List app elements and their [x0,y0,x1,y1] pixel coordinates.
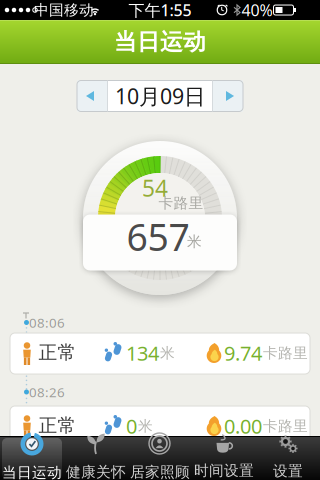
staticText: 134 [126,340,159,366]
staticText: 10月09日 [115,82,205,110]
staticText: 卡路里 [263,417,308,435]
button[interactable]: 前一天 [75,80,105,111]
staticText: 0 [126,413,137,439]
staticText: 中国移动 [34,1,94,19]
button[interactable]: 设置 [256,436,320,480]
staticText: 657 [126,212,189,261]
staticText: 08:26 [29,383,65,401]
staticText: 健康关怀 [66,463,126,480]
staticText: 当日运动 [114,28,206,56]
staticText: 正常 [38,341,76,364]
staticText: 时间设置 [194,461,254,479]
button[interactable]: 当日运动 [0,436,64,480]
staticText: 08:06 [29,314,65,331]
button[interactable]: 时间设置 [192,436,256,480]
staticText: 米 [160,344,175,362]
staticText: 40% [241,0,272,21]
staticText: 9.74 [224,340,262,366]
staticText: 54 [142,173,168,203]
button[interactable]: 居家照顾 [128,436,192,480]
staticText: 米 [187,232,202,250]
staticText: 卡路里 [263,344,308,362]
staticText: 下午1:55 [128,0,191,21]
button[interactable]: 健康关怀 [64,436,128,480]
button[interactable]: 后一天 [215,80,245,111]
staticText: 正常 [38,414,76,437]
button[interactable]: 正常 [10,406,310,447]
staticText: 卡路里 [158,194,203,212]
staticText: 米 [138,417,153,435]
staticText: 0.00 [224,413,262,439]
staticText: 设置 [273,462,303,480]
staticText: 当日运动 [2,463,62,480]
button[interactable]: 正常 [10,333,310,374]
staticText: 居家照顾 [130,463,190,480]
